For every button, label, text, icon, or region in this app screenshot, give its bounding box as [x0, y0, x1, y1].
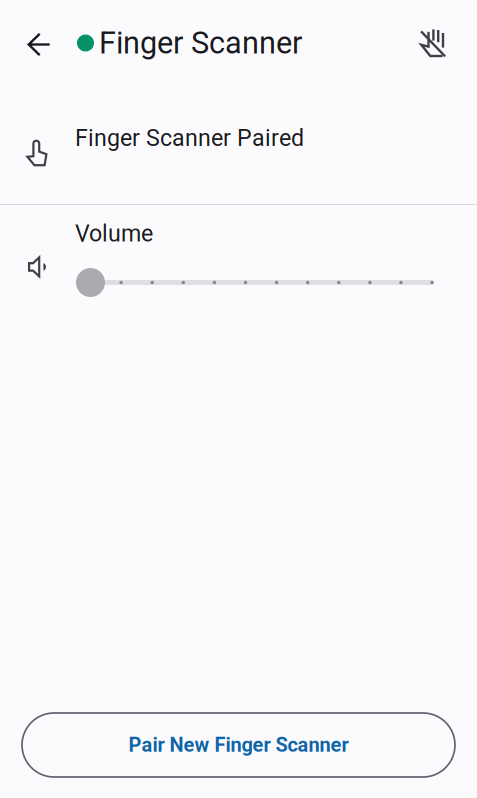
staticText: Finger Scanner: [99, 25, 302, 61]
button[interactable]: Back: [11, 0, 67, 86]
staticText: Finger Scanner Paired: [75, 124, 304, 152]
button[interactable]: Stop scanning: [405, 0, 461, 86]
staticText: Pair New Finger Scanner: [128, 733, 348, 757]
button[interactable]: Pair New Finger Scanner: [22, 713, 455, 777]
staticText: Volume: [75, 220, 153, 247]
